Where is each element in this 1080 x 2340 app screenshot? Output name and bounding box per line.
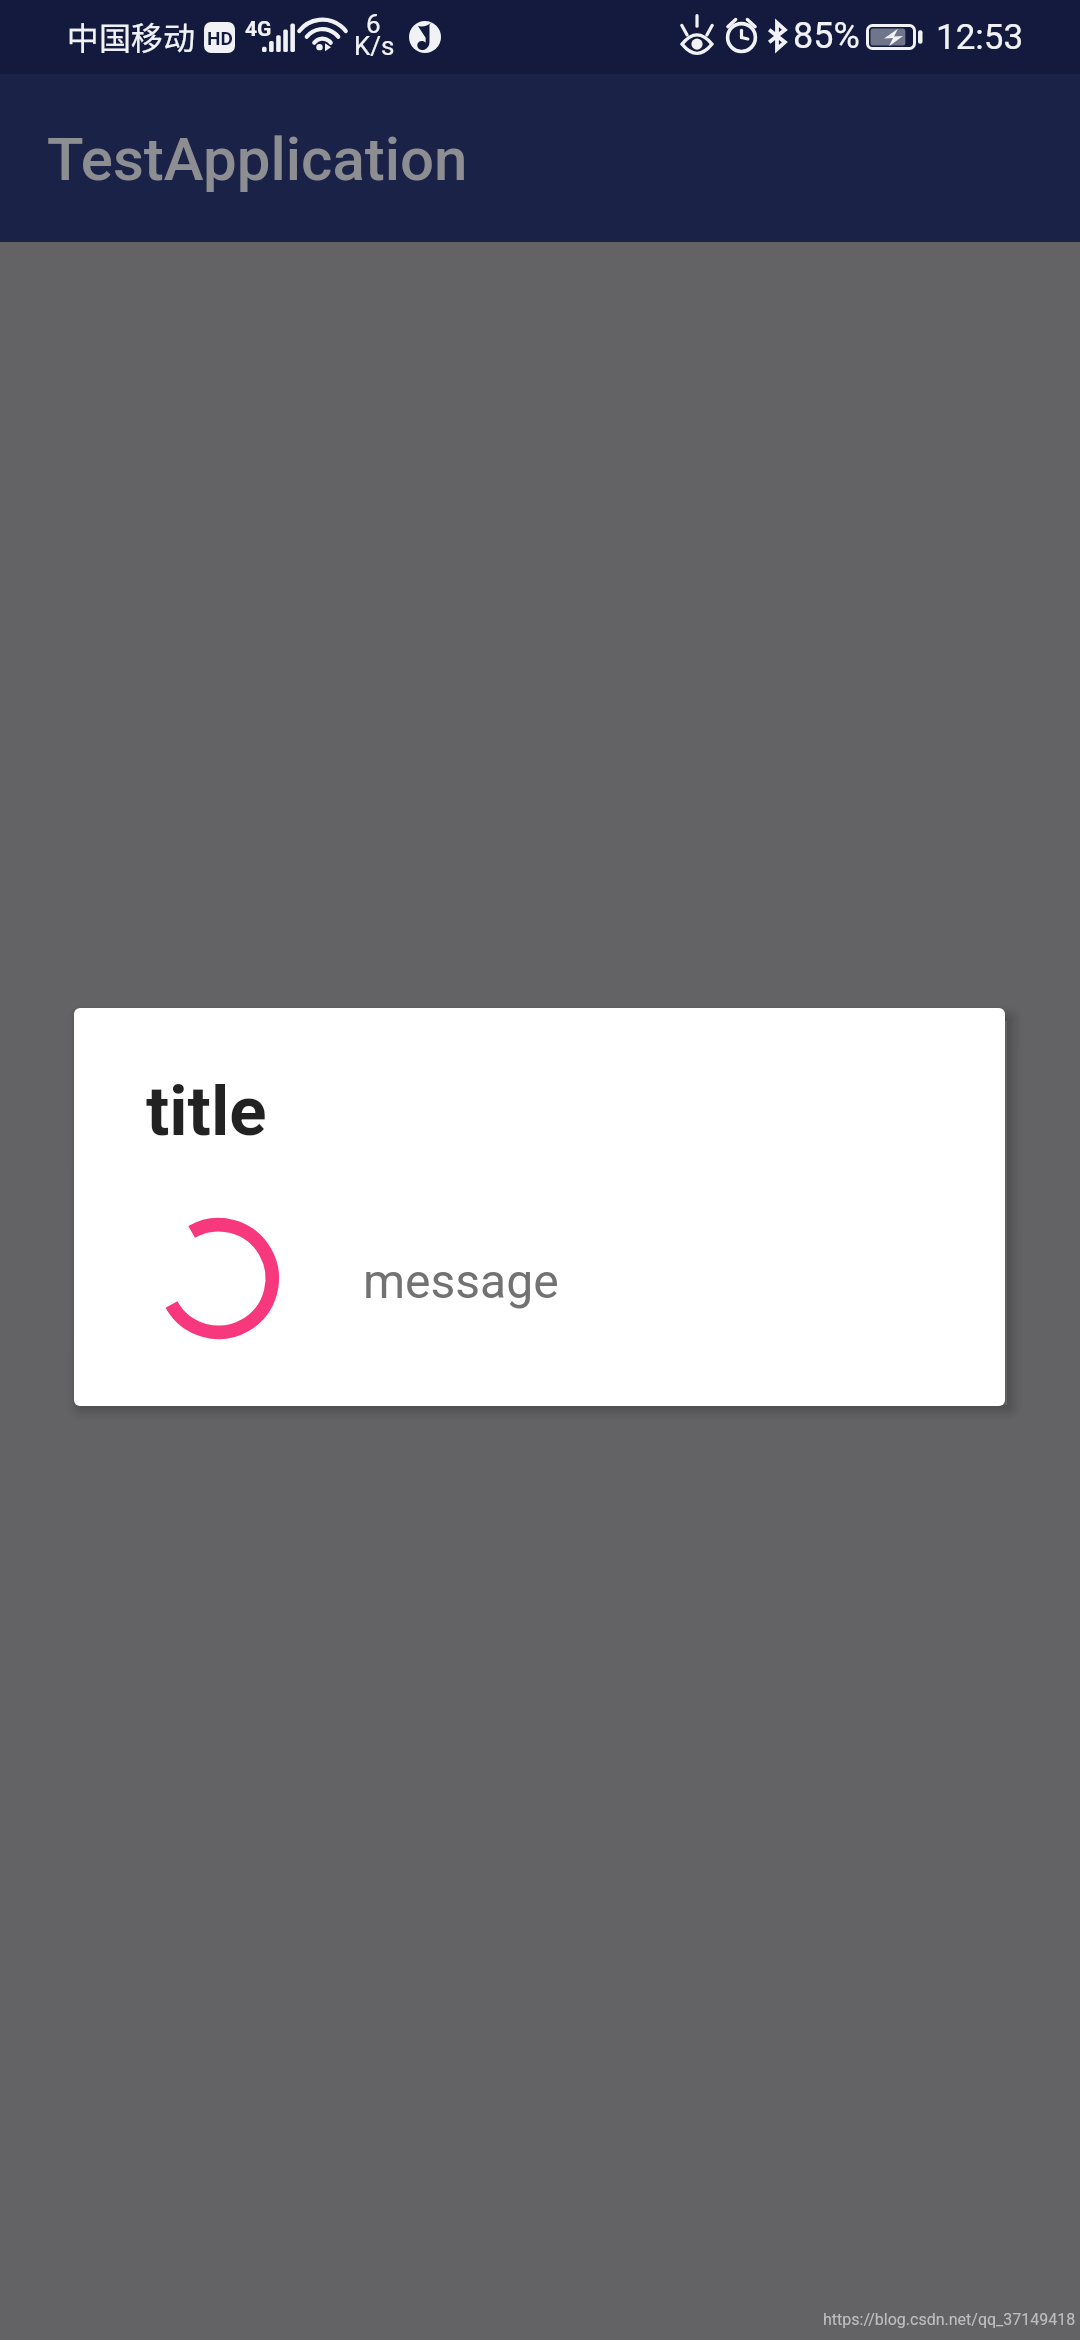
- button[interactable]: TestApplication: [0, 74, 1080, 242]
- staticText: K/s: [354, 31, 395, 61]
- staticText: 4G: [245, 17, 272, 42]
- staticText: 85%: [793, 15, 860, 57]
- other: Alarm set: [725, 19, 758, 51]
- staticText: HD: [207, 27, 233, 49]
- staticText: 12:53: [936, 17, 1024, 58]
- staticText: 6: [366, 9, 381, 39]
- other: Loading: [158, 1218, 279, 1339]
- other: Bluetooth on: [763, 22, 791, 50]
- other: Carrier logo: [409, 21, 441, 53]
- staticText: https://blog.csdn.net/qq_37149418: [823, 2310, 1076, 2329]
- button[interactable]: title: [74, 1008, 1005, 1406]
- staticText: TestApplication: [47, 124, 468, 194]
- other: Wi-Fi connected: [304, 20, 341, 51]
- other: 4G signal strength: [245, 17, 295, 53]
- other: Battery 85 percent, charging: [866, 24, 924, 50]
- staticText: 中国移动: [67, 13, 196, 59]
- staticText: message: [363, 1253, 559, 1309]
- staticText: title: [146, 1071, 267, 1152]
- other: Eye comfort mode on: [680, 21, 714, 55]
